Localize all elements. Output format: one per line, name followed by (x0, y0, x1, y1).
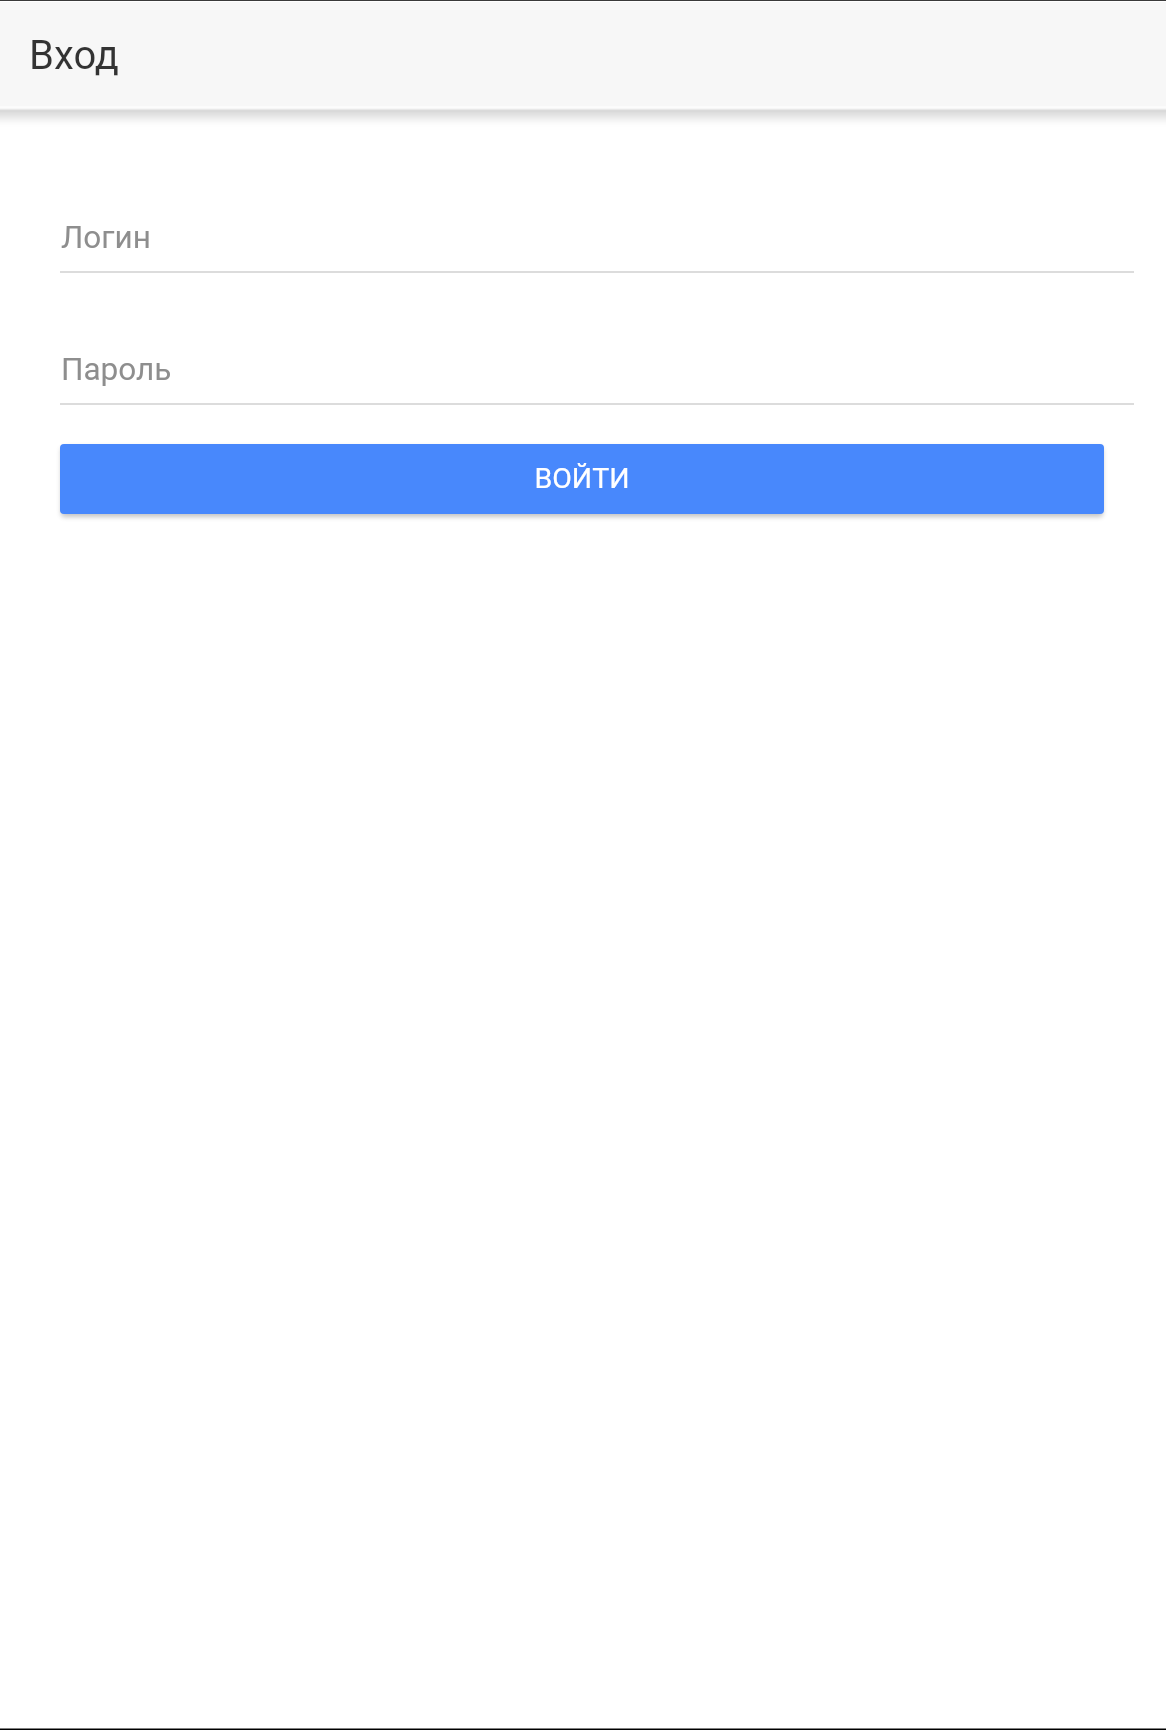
staticText: Вход (29, 32, 119, 79)
button[interactable]: Пароль (60, 335, 1134, 405)
button[interactable]: Логин (60, 203, 1134, 273)
staticText: Логин (61, 219, 151, 256)
button[interactable]: ВОЙТИ (60, 444, 1104, 514)
staticText: Пароль (61, 351, 172, 388)
staticText: ВОЙТИ (534, 462, 630, 495)
